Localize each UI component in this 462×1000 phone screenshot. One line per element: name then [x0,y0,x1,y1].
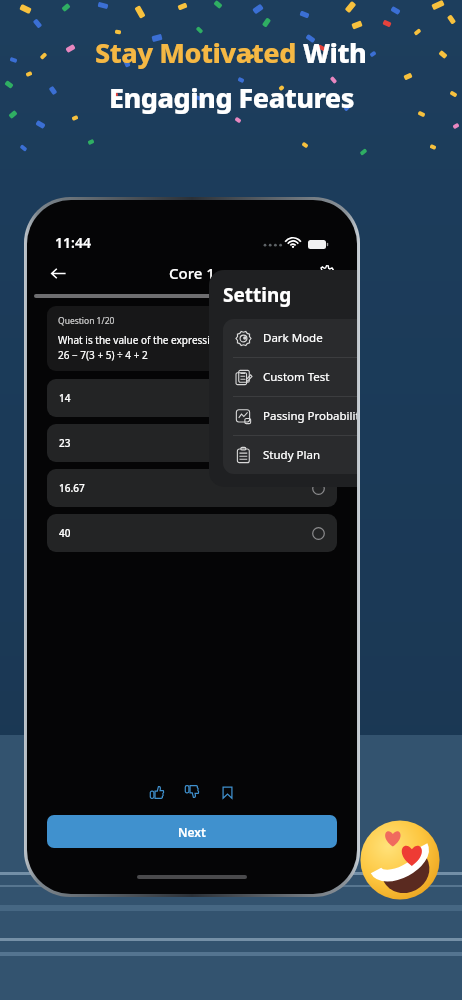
staticText: Engaging Features [109,79,354,116]
button[interactable]: Next [47,815,337,848]
button[interactable]: Settings [309,256,343,290]
staticText: 16.67 [59,481,85,495]
button[interactable]: Custom Test [223,358,357,396]
staticText: Core 1 [169,263,215,283]
button[interactable]: 23 [47,424,337,462]
button[interactable]: 16.67 [47,469,337,507]
button[interactable]: Dislike [179,779,205,805]
staticText: 14 [59,391,71,405]
button[interactable]: Bookmark [214,779,240,805]
staticText: Custom Test [263,369,330,385]
button[interactable]: Like [144,779,170,805]
button[interactable]: Dark Mode [223,319,357,357]
staticText: 40 [59,526,71,540]
button[interactable]: 40 [47,514,337,552]
button[interactable]: Passing Probability [223,397,357,435]
staticText: Passing Probability [263,408,357,424]
staticText: Stay Motivated [95,34,303,71]
staticText: Dark Mode [263,330,323,346]
staticText: 23 [59,436,71,450]
staticText: Next [178,824,206,840]
button[interactable]: 14 [47,379,337,417]
staticText: Setting [223,282,292,308]
button[interactable]: Back [41,256,75,290]
button[interactable]: Study Plan [223,436,357,474]
staticText: What is the value of the expression 26 −… [58,333,222,362]
staticText: 11:44 [55,233,91,252]
staticText: Question 1/20 [58,315,115,327]
staticText: Study Plan [263,447,320,463]
staticText: With [303,34,367,71]
